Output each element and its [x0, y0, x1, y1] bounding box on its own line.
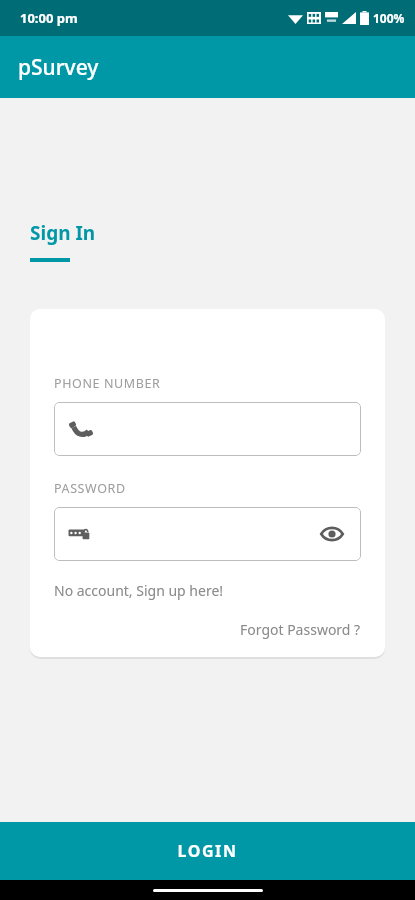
staticText: LOGIN [177, 840, 238, 862]
other: Phone number [68, 416, 94, 442]
button[interactable]: Show password [317, 519, 347, 549]
staticText: pSurvey [18, 53, 99, 82]
button[interactable]: Sign In [28, 218, 98, 264]
staticText: 100% [373, 10, 405, 26]
staticText: No account, Sign up here! [54, 581, 224, 600]
button[interactable]: Password [54, 507, 361, 561]
staticText: Forgot Password ? [240, 620, 361, 639]
staticText: 10:00 pm [20, 9, 78, 27]
staticText: PASSWORD [54, 480, 126, 497]
button[interactable]: Phone number [54, 402, 361, 456]
button[interactable]: Forgot Password ? [240, 620, 361, 639]
staticText: Sign In [30, 220, 96, 246]
button[interactable]: LOGIN [0, 822, 415, 880]
staticText: PHONE NUMBER [54, 375, 161, 392]
other: Password [68, 521, 94, 547]
button[interactable]: No account, Sign up here! [54, 581, 224, 600]
